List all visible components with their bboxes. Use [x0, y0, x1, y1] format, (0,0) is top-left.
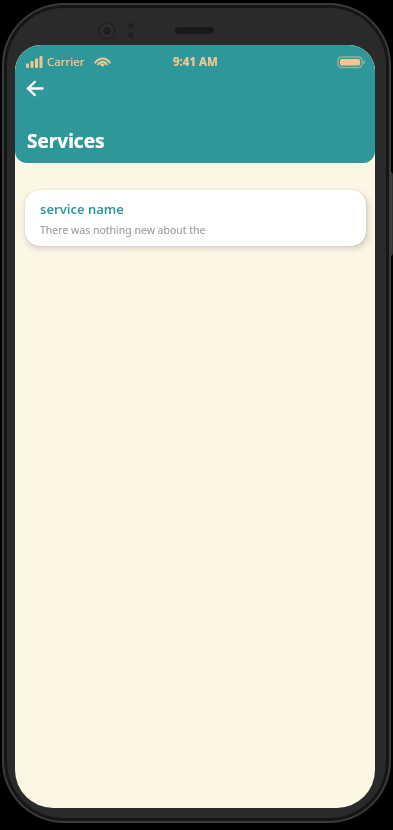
staticText: Carrier: [47, 54, 85, 69]
staticText: There was nothing new about the: [40, 223, 206, 237]
button[interactable]: [21, 75, 49, 101]
staticText: Services: [27, 128, 105, 154]
button[interactable]: service name: [25, 190, 366, 246]
staticText: service name: [40, 200, 124, 218]
staticText: 9:41 AM: [173, 54, 218, 69]
